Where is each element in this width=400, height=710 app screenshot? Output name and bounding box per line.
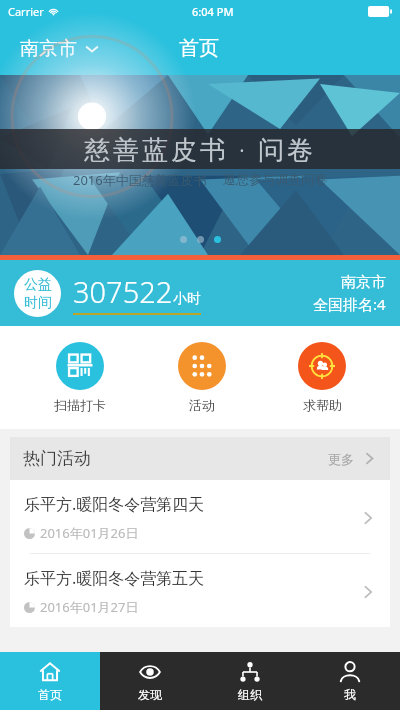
- staticText: 我: [344, 687, 356, 702]
- staticText: 乐平方.暖阳冬令营第五天: [24, 567, 205, 589]
- button[interactable]: 求帮助: [280, 340, 364, 415]
- button[interactable]: 热门活动: [10, 437, 390, 480]
- staticText: 时间: [24, 294, 52, 312]
- staticText: 热门活动: [23, 448, 91, 469]
- staticText: 公益: [24, 276, 52, 294]
- staticText: 扫描打卡: [54, 397, 106, 413]
- staticText: 发现: [138, 687, 162, 702]
- button[interactable]: 组织: [200, 652, 300, 710]
- staticText: 307522: [73, 272, 173, 311]
- staticText: 6:04 PM: [192, 4, 234, 19]
- staticText: 乐平方.暖阳冬令营第四天: [24, 493, 205, 515]
- staticText: 首页: [38, 687, 62, 702]
- button[interactable]: 活动: [160, 340, 244, 415]
- staticText: 首页: [179, 36, 219, 61]
- staticText: Carrier: [8, 4, 44, 19]
- staticText: 求帮助: [303, 397, 342, 413]
- staticText: 小时: [173, 290, 201, 308]
- button[interactable]: 南京市: [16, 33, 103, 65]
- staticText: 南京市: [20, 37, 77, 61]
- button[interactable]: 扫描打卡: [36, 340, 124, 415]
- button[interactable]: 乐平方.暖阳冬令营第五天: [10, 554, 390, 627]
- button[interactable]: 我: [300, 652, 400, 710]
- staticText: 2016年01月27日: [40, 598, 139, 616]
- staticText: 邀您参与调查问卷: [223, 171, 327, 187]
- staticText: 南京市: [341, 273, 386, 292]
- staticText: 活动: [189, 397, 215, 413]
- button[interactable]: 发现: [100, 652, 200, 710]
- staticText: 2016年中国慈善蓝皮书: [73, 171, 207, 189]
- staticText: 慈善蓝皮书 · 问卷: [84, 131, 316, 167]
- staticText: 更多: [328, 451, 354, 467]
- staticText: 2016年01月26日: [40, 524, 139, 542]
- staticText: 组织: [238, 687, 262, 702]
- staticText: 全国排名:4: [313, 294, 386, 314]
- button[interactable]: 首页: [0, 652, 100, 710]
- button[interactable]: 乐平方.暖阳冬令营第四天: [10, 480, 390, 554]
